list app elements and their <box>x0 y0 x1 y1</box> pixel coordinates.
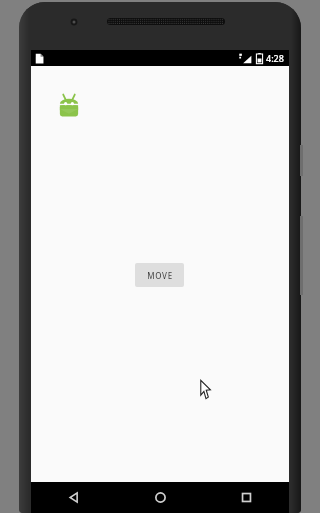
button[interactable]: Home <box>117 482 203 513</box>
staticText: MOVE <box>147 270 173 281</box>
button[interactable]: MOVE <box>135 263 184 287</box>
button[interactable]: Recent apps <box>203 482 289 513</box>
button[interactable]: Back <box>31 482 117 513</box>
other: Android logo <box>57 93 81 119</box>
staticText: 4:28 <box>266 52 284 64</box>
